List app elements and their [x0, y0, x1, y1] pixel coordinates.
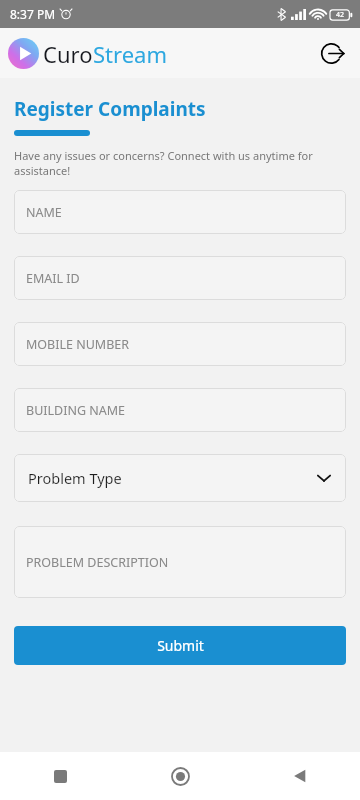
staticText: 8:37 PM: [10, 6, 56, 22]
button[interactable]: MOBILE NUMBER: [14, 322, 346, 366]
staticText: Problem Type: [28, 468, 122, 488]
staticText: EMAIL ID: [26, 270, 80, 287]
button[interactable]: NAME: [14, 190, 346, 234]
button[interactable]: EMAIL ID: [14, 256, 346, 300]
staticText: Curo: [43, 39, 93, 69]
button[interactable]: Logout: [314, 35, 350, 71]
staticText: PROBLEM DESCRIPTION: [26, 554, 169, 571]
button[interactable]: Home: [120, 752, 240, 800]
button[interactable]: Submit: [14, 626, 346, 665]
staticText: 42: [336, 10, 345, 20]
button[interactable]: Problem Type: [14, 454, 346, 502]
staticText: Stream: [93, 39, 167, 69]
staticText: NAME: [26, 204, 62, 221]
button[interactable]: Back: [240, 752, 360, 800]
staticText: MOBILE NUMBER: [26, 336, 130, 353]
staticText: BUILDING NAME: [26, 402, 126, 419]
button[interactable]: PROBLEM DESCRIPTION: [14, 526, 346, 598]
staticText: Have any issues or concerns? Connect wit…: [14, 148, 346, 178]
staticText: Submit: [157, 636, 204, 655]
staticText: Register Complaints: [14, 96, 206, 122]
button[interactable]: BUILDING NAME: [14, 388, 346, 432]
button[interactable]: Recents: [0, 752, 120, 800]
